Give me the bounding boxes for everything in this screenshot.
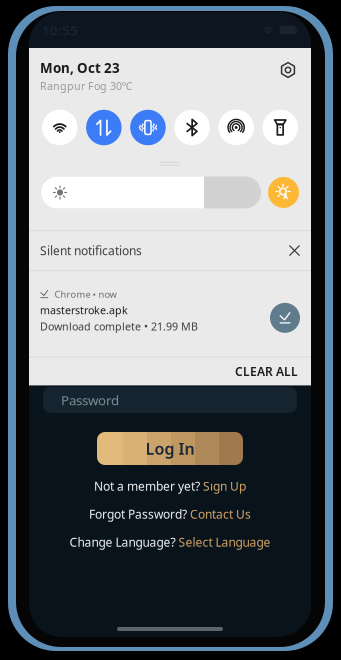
staticText: Log In <box>145 438 194 459</box>
staticText: Chrome • now <box>54 288 116 300</box>
button[interactable]: Password <box>43 387 297 413</box>
button[interactable]: Not a member yet? <box>29 479 311 493</box>
staticText: CLEAR ALL <box>235 363 298 379</box>
staticText: Select Language <box>178 534 270 550</box>
staticText: Change Language? <box>69 534 178 550</box>
staticText: Rangpur Fog 30℃ <box>40 79 133 93</box>
staticText: Download complete • 21.99 MB <box>40 319 198 333</box>
button[interactable]: Mobile data <box>86 110 122 145</box>
staticText: Sign Up <box>203 478 246 494</box>
button[interactable]: CLEAR ALL <box>225 355 308 387</box>
button[interactable]: Bluetooth <box>174 110 210 145</box>
staticText: 10:55 <box>42 21 78 39</box>
staticText: masterstroke.apk <box>40 303 128 317</box>
staticText: Mon, Oct 23 <box>40 59 120 77</box>
button[interactable]: Vibrate <box>130 110 166 145</box>
button[interactable]: Log In <box>97 432 243 465</box>
staticText: Password <box>61 391 119 409</box>
button[interactable]: Hotspot <box>218 110 254 145</box>
staticText: Not a member yet? <box>94 478 203 494</box>
button[interactable]: Flashlight <box>262 110 298 145</box>
staticText: Silent notifications <box>40 243 142 258</box>
button[interactable]: Wi-Fi <box>42 110 77 145</box>
staticText: Forgot Password? <box>89 506 190 522</box>
button[interactable]: Change Language? <box>29 535 311 549</box>
staticText: Contact Us <box>190 506 251 522</box>
button[interactable]: Forgot Password? <box>29 507 311 521</box>
button[interactable]: Chrome • now <box>29 271 311 357</box>
button[interactable]: Silent notifications <box>29 231 311 270</box>
button[interactable]: Auto brightness <box>268 177 299 208</box>
button[interactable]: Settings <box>276 58 300 82</box>
